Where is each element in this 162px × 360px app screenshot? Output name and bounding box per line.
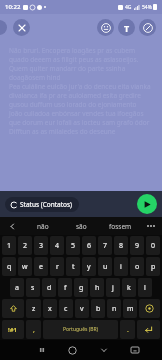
staticText: , xyxy=(33,325,35,335)
staticText: k xyxy=(127,283,131,293)
staticText: Português (BR) xyxy=(63,326,99,333)
staticText: r xyxy=(56,262,59,272)
staticText: 8 xyxy=(119,241,124,251)
button[interactable]: Hide keyboard xyxy=(119,340,150,360)
button[interactable]: 6 xyxy=(82,236,96,255)
button[interactable]: Enter xyxy=(137,320,160,339)
staticText: não xyxy=(37,222,49,231)
staticText: j xyxy=(112,283,114,293)
staticText: 7 xyxy=(103,241,108,251)
button[interactable]: z xyxy=(26,299,41,318)
staticText: 54% xyxy=(142,4,152,11)
staticText: y xyxy=(87,262,91,272)
button[interactable]: fossem xyxy=(101,217,140,235)
staticText: fossem xyxy=(109,222,132,231)
staticText: !#1 xyxy=(8,326,18,334)
button[interactable]: t xyxy=(66,257,80,276)
button[interactable]: g xyxy=(74,278,88,297)
button[interactable]: h xyxy=(90,278,104,297)
staticText: q xyxy=(7,262,12,272)
staticText: g xyxy=(79,283,84,293)
button[interactable]: Backspace xyxy=(139,299,160,318)
button[interactable]: !#1 xyxy=(2,320,24,339)
staticText: n xyxy=(112,304,117,314)
button[interactable]: f xyxy=(58,278,72,297)
button[interactable]: Emoji xyxy=(97,19,114,36)
button[interactable]: r xyxy=(50,257,64,276)
staticText: o xyxy=(135,262,140,272)
button[interactable]: 2 xyxy=(18,236,32,255)
button[interactable]: a xyxy=(10,278,24,297)
staticText: a xyxy=(15,283,19,293)
button[interactable]: Back xyxy=(88,340,119,360)
button[interactable]: Close xyxy=(13,19,30,36)
button[interactable]: w xyxy=(18,257,32,276)
button[interactable]: Home xyxy=(57,340,88,360)
staticText: i xyxy=(120,262,122,272)
staticText: 4G xyxy=(125,4,132,11)
button[interactable]: , xyxy=(26,320,41,339)
button[interactable]: c xyxy=(59,299,73,318)
staticText: w xyxy=(22,262,28,272)
staticText: 5 xyxy=(71,241,76,251)
button[interactable]: x xyxy=(43,299,57,318)
button[interactable]: k xyxy=(122,278,136,297)
button[interactable]: b xyxy=(91,299,105,318)
button[interactable]: d xyxy=(42,278,56,297)
button[interactable]: Draw xyxy=(139,19,156,36)
button[interactable]: e xyxy=(34,257,48,276)
button[interactable]: Português (BR) xyxy=(43,320,118,339)
staticText: 1 xyxy=(7,241,12,251)
staticText: 10:22 xyxy=(5,3,21,11)
staticText: v xyxy=(80,304,84,314)
button[interactable]: p xyxy=(146,257,160,276)
button[interactable]: m xyxy=(123,299,137,318)
button[interactable]: u xyxy=(98,257,112,276)
button[interactable]: Send xyxy=(137,194,157,214)
button[interactable]: 3 xyxy=(34,236,48,255)
staticText: Status (Contatos) xyxy=(20,200,73,209)
button[interactable]: 1 xyxy=(2,236,16,255)
staticText: . xyxy=(127,325,129,335)
staticText: s xyxy=(31,283,35,293)
staticText: f xyxy=(64,283,67,293)
button[interactable]: v xyxy=(75,299,89,318)
button[interactable]: n xyxy=(107,299,121,318)
button[interactable]: Text style xyxy=(118,19,135,36)
button[interactable]: 9 xyxy=(130,236,144,255)
button[interactable]: o xyxy=(130,257,144,276)
button[interactable]: i xyxy=(114,257,128,276)
staticText: x xyxy=(48,304,52,314)
button[interactable]: não xyxy=(24,217,62,235)
button[interactable]: s xyxy=(26,278,40,297)
button[interactable]: 4 xyxy=(50,236,64,255)
button[interactable]: 5 xyxy=(66,236,80,255)
staticText: h xyxy=(95,283,100,293)
button[interactable]: l xyxy=(138,278,152,297)
button[interactable]: . xyxy=(120,320,135,339)
button[interactable]: Previous xyxy=(0,217,24,235)
staticText: são xyxy=(76,222,87,231)
button[interactable]: 7 xyxy=(98,236,112,255)
button[interactable]: são xyxy=(62,217,101,235)
button[interactable]: q xyxy=(2,257,16,276)
button[interactable]: Recents xyxy=(26,340,57,360)
staticText: 3 xyxy=(39,241,44,251)
staticText: Não brurl. Encopera loagães pr as cubem … xyxy=(9,46,153,136)
staticText: 9 xyxy=(135,241,140,251)
staticText: 2 xyxy=(23,241,28,251)
button[interactable]: j xyxy=(106,278,120,297)
button[interactable]: Status (Contatos) xyxy=(5,197,79,212)
staticText: T xyxy=(124,22,130,34)
button[interactable]: 8 xyxy=(114,236,128,255)
staticText: m xyxy=(127,304,134,314)
staticText: t xyxy=(72,262,75,272)
button[interactable]: Shift xyxy=(2,299,24,318)
staticText: u xyxy=(103,262,108,272)
staticText: e xyxy=(39,262,43,272)
button[interactable]: More options xyxy=(140,217,162,235)
button[interactable]: 0 xyxy=(146,236,160,255)
button[interactable]: y xyxy=(82,257,96,276)
staticText: c xyxy=(64,304,68,314)
staticText: p xyxy=(151,262,156,272)
